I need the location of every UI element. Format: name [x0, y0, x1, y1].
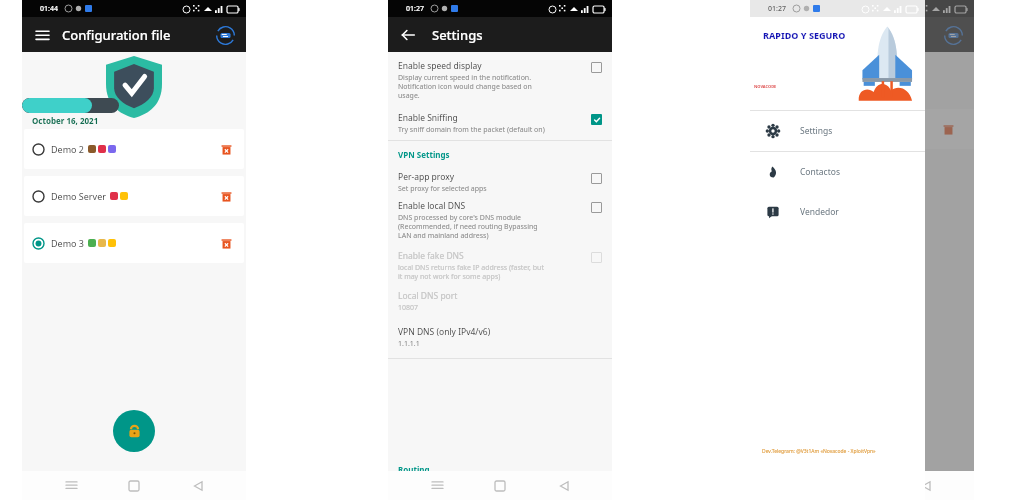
button[interactable]: Enable local DNS	[591, 202, 602, 213]
staticText: Try sniff domain from the packet (defaul…	[398, 125, 545, 135]
button[interactable]: VPN DNS (only IPv4/v6)	[388, 324, 612, 358]
button[interactable]: Vendedor	[750, 192, 925, 232]
staticText: local DNS returns fake IP address (faste…	[398, 263, 544, 281]
button[interactable]: Home	[485, 471, 515, 500]
button[interactable]: Enable speed display	[388, 58, 612, 110]
button[interactable]: Per-app proxy	[591, 173, 602, 184]
button[interactable]: Recents	[422, 471, 452, 500]
staticText: Enable speed display	[398, 60, 482, 72]
button[interactable]: Per-app proxy	[388, 169, 612, 198]
staticText: 10807	[398, 303, 419, 313]
button[interactable]: Settings	[750, 111, 925, 151]
staticText: Settings	[432, 26, 483, 44]
staticText: Dev.Telegram: @V3t1Am «Novacode - Xploit…	[762, 448, 925, 455]
staticText: Contactos	[800, 166, 840, 178]
button[interactable]: Demo 3	[24, 223, 244, 263]
staticText: Demo 2	[51, 143, 84, 155]
button[interactable]: Demo 2	[24, 129, 244, 169]
staticText: 1.1.1.1	[398, 339, 420, 349]
staticText: October 16, 2021	[32, 115, 99, 126]
button[interactable]: Connect	[113, 410, 155, 452]
staticText: Display current speed in the notificatio…	[398, 73, 532, 100]
button[interactable]: Recents	[56, 471, 86, 500]
button[interactable]: Menu	[30, 23, 54, 47]
staticText: Demo Server	[51, 190, 106, 202]
staticText: Per-app proxy	[398, 171, 454, 183]
button[interactable]: Back	[911, 471, 941, 500]
button[interactable]: Back	[396, 23, 420, 47]
staticText: Settings	[800, 125, 833, 137]
button[interactable]: Enable local DNS	[388, 198, 612, 248]
staticText: 01:27	[406, 4, 424, 14]
staticText: VPN Settings	[398, 149, 450, 160]
button[interactable]: Delete	[216, 186, 236, 206]
button[interactable]: Contactos	[750, 152, 925, 192]
staticText: RAPIDO Y SEGURO	[763, 29, 846, 41]
staticText: Enable Sniffing	[398, 112, 458, 124]
button[interactable]: Delete	[216, 233, 236, 253]
staticText: Configuration file	[62, 26, 171, 44]
button[interactable]: Enable speed display	[591, 62, 602, 73]
staticText: VPN DNS (only IPv4/v6)	[398, 326, 491, 338]
button[interactable]: Back	[549, 471, 579, 500]
button[interactable]: Enable Sniffing	[388, 110, 612, 140]
button[interactable]: Back	[183, 471, 213, 500]
staticText: Enable local DNS	[398, 200, 466, 212]
staticText: Vendedor	[800, 206, 839, 218]
staticText: NOVACODE	[754, 84, 777, 89]
button[interactable]: Enable fake DNS	[591, 252, 602, 263]
staticText: 01:44	[40, 4, 58, 14]
staticText: 01:27	[768, 4, 786, 14]
button[interactable]: Sync	[212, 22, 238, 48]
staticText: Enable fake DNS	[398, 250, 464, 262]
button[interactable]: Delete	[216, 139, 236, 159]
button[interactable]: Enable Sniffing	[591, 114, 602, 125]
staticText: DNS processed by core's DNS module (Reco…	[398, 213, 538, 240]
button[interactable]: Home	[119, 471, 149, 500]
button[interactable]: Demo Server	[24, 176, 244, 216]
button[interactable]: Local DNS port	[388, 288, 612, 324]
staticText: Set proxy for selected apps	[398, 184, 487, 194]
staticText: 01:27	[768, 4, 786, 14]
staticText: Routing	[398, 464, 430, 471]
staticText: Demo 3	[51, 237, 84, 249]
staticText: Local DNS port	[398, 290, 458, 302]
button[interactable]: Enable fake DNS	[388, 248, 612, 288]
